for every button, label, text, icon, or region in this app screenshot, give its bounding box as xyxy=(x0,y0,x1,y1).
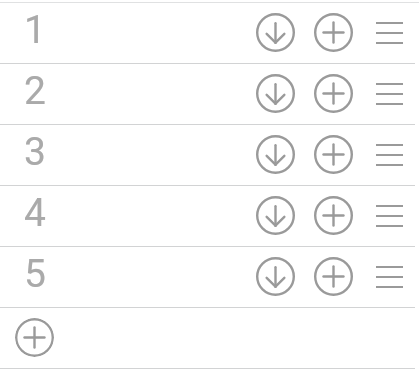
staticText: 4 xyxy=(24,190,46,236)
button[interactable]: 3 xyxy=(0,125,419,186)
staticText: 5 xyxy=(24,251,46,297)
button[interactable]: 2 xyxy=(0,64,419,125)
button[interactable]: Add xyxy=(307,3,359,64)
button[interactable]: Reorder xyxy=(363,125,415,186)
button[interactable]: Add xyxy=(307,186,359,247)
button[interactable]: Reorder xyxy=(363,3,415,64)
button[interactable]: Download xyxy=(249,186,301,247)
button[interactable]: Download xyxy=(249,3,301,64)
button[interactable]: 5 xyxy=(0,247,419,308)
button[interactable]: Add item xyxy=(15,318,54,357)
button[interactable]: Reorder xyxy=(363,247,415,308)
button[interactable]: Add xyxy=(307,125,359,186)
staticText: 1 xyxy=(24,7,46,53)
button[interactable]: Download xyxy=(249,125,301,186)
button[interactable]: Reorder xyxy=(363,186,415,247)
staticText: 3 xyxy=(24,129,46,175)
button[interactable]: Add xyxy=(307,247,359,308)
button[interactable]: 4 xyxy=(0,186,419,247)
button[interactable]: 1 xyxy=(0,3,419,64)
staticText: 2 xyxy=(24,68,46,114)
button[interactable]: Download xyxy=(249,64,301,125)
button[interactable]: Download xyxy=(249,247,301,308)
button[interactable]: Add xyxy=(307,64,359,125)
button[interactable]: Reorder xyxy=(363,64,415,125)
